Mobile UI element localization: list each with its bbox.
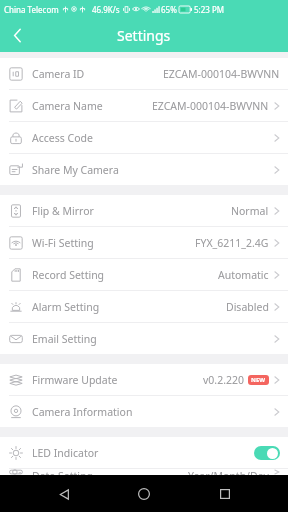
staticText: 65% <box>161 4 177 15</box>
staticText: Camera Information <box>32 405 133 419</box>
staticText: v0.2.220 <box>203 373 244 387</box>
staticText: Camera Name <box>32 99 103 113</box>
staticText: Flip & Mirror <box>32 204 94 218</box>
button[interactable]: Record Setting <box>0 259 288 290</box>
button[interactable]: Share My Camera <box>0 154 288 185</box>
button[interactable]: Recent apps <box>208 477 242 511</box>
staticText: Access Code <box>32 131 93 145</box>
staticText: Wi-Fi Setting <box>32 236 94 250</box>
staticText: LED Indicator <box>32 446 99 460</box>
button[interactable]: Flip & Mirror <box>0 195 288 226</box>
button[interactable]: LED Indicator switch <box>254 446 280 460</box>
staticText: Firmware Update <box>32 373 118 387</box>
button[interactable]: Camera ID <box>0 58 288 89</box>
staticText: Normal <box>231 204 269 218</box>
button[interactable]: Access Code <box>0 122 288 153</box>
staticText: 5:23 PM <box>194 4 225 15</box>
staticText: Year/Month/Day <box>188 469 269 475</box>
button[interactable]: Date Setting <box>0 469 288 475</box>
button[interactable]: Back <box>47 477 81 511</box>
staticText: FYX_6211_2.4G <box>195 236 269 250</box>
staticText: EZCAM-000104-BWVNN <box>152 99 269 113</box>
button[interactable]: Email Setting <box>0 323 288 354</box>
button[interactable]: Wi-Fi Setting <box>0 227 288 258</box>
staticText: Email Setting <box>32 332 97 346</box>
button[interactable]: Alarm Setting <box>0 291 288 322</box>
staticText: Date Setting <box>32 469 93 475</box>
staticText: Share My Camera <box>32 163 119 177</box>
button[interactable]: Firmware Update <box>0 364 288 395</box>
staticText: Alarm Setting <box>32 300 100 314</box>
button[interactable]: Back <box>0 18 34 52</box>
staticText: NEW <box>251 376 266 384</box>
staticText: Camera ID <box>32 67 85 81</box>
button[interactable]: Home <box>127 477 161 511</box>
staticText: 46.9K/s <box>92 4 120 15</box>
button[interactable]: Camera Name <box>0 90 288 121</box>
staticText: EZCAM-000104-BWVNN <box>163 67 280 81</box>
button[interactable]: LED Indicator <box>0 437 288 468</box>
staticText: China Telecom <box>4 4 59 15</box>
staticText: Settings <box>117 26 171 45</box>
button[interactable]: Camera Information <box>0 396 288 427</box>
staticText: Record Setting <box>32 268 105 282</box>
staticText: Disabled <box>226 300 269 314</box>
staticText: Automatic <box>218 268 269 282</box>
